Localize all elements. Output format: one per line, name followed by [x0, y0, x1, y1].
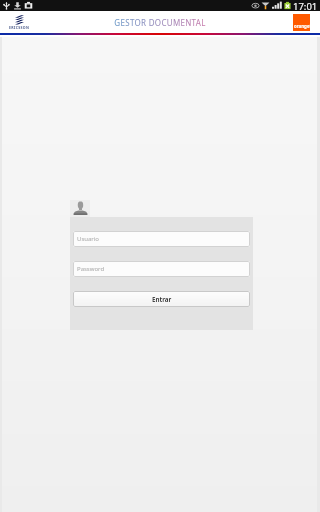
- button[interactable]: Usuario: [73, 231, 250, 247]
- staticText: ERICSSON: [9, 25, 30, 30]
- staticText: Usuario: [77, 235, 99, 243]
- button[interactable]: Orange: [293, 14, 310, 31]
- staticText: Entrar: [152, 295, 172, 303]
- staticText: orange™: [294, 23, 310, 29]
- staticText: Password: [77, 265, 105, 273]
- staticText: 17:01: [293, 0, 318, 11]
- button[interactable]: Ericsson: [9, 15, 30, 30]
- button[interactable]: Entrar: [73, 291, 250, 307]
- staticText: GESTOR DOCUMENTAL: [114, 17, 206, 28]
- button[interactable]: Password: [73, 261, 250, 277]
